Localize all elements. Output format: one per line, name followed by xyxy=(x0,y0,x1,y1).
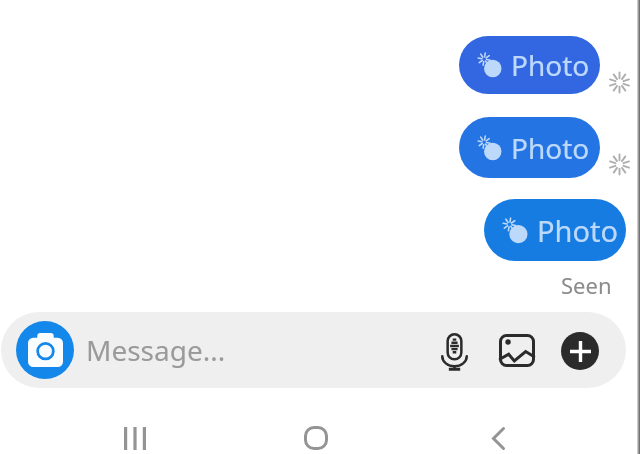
button[interactable]: Home xyxy=(273,422,359,454)
staticText: Seen xyxy=(561,270,612,300)
staticText: Photo xyxy=(511,46,590,84)
button[interactable]: Voice message xyxy=(429,325,479,375)
button[interactable]: Back xyxy=(455,422,541,454)
staticText: Photo xyxy=(511,129,590,167)
button[interactable]: Message... xyxy=(86,312,429,388)
staticText: Message... xyxy=(86,331,226,369)
staticText: Photo xyxy=(537,211,619,250)
button[interactable]: More options xyxy=(555,325,605,375)
button[interactable]: Photo xyxy=(459,117,600,178)
button[interactable]: Photo xyxy=(484,199,626,261)
button[interactable]: Photo xyxy=(459,36,600,94)
button[interactable]: Camera xyxy=(16,321,74,379)
button[interactable]: Gallery xyxy=(492,325,542,375)
button[interactable]: Recents xyxy=(92,422,178,454)
